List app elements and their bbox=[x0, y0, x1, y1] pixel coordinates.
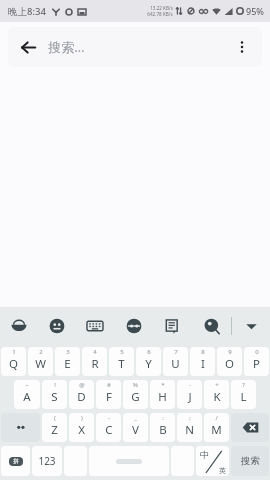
button[interactable]: 7 bbox=[163, 347, 188, 376]
button[interactable]: * bbox=[150, 380, 175, 409]
staticText: ! bbox=[54, 381, 56, 389]
staticText: V bbox=[132, 422, 139, 438]
button[interactable]: 搜索 bbox=[231, 446, 269, 476]
button[interactable]: + bbox=[204, 380, 229, 409]
staticText: Y bbox=[145, 356, 152, 372]
staticText: K bbox=[213, 389, 221, 405]
staticText: G bbox=[131, 389, 140, 405]
button[interactable]: Sticker bbox=[153, 307, 192, 345]
staticText: 3 bbox=[66, 348, 70, 356]
staticText: * bbox=[161, 381, 165, 389]
staticText: ; bbox=[189, 414, 191, 422]
staticText: ~ bbox=[25, 381, 29, 389]
button[interactable]: 5 bbox=[109, 347, 134, 376]
staticText: W bbox=[35, 356, 46, 372]
button[interactable]: Emoji bbox=[38, 307, 76, 345]
button[interactable]: - bbox=[96, 413, 121, 442]
staticText: 642.78 KB/s bbox=[147, 11, 173, 17]
button[interactable]: % bbox=[123, 380, 148, 409]
staticText: Q bbox=[9, 356, 18, 372]
button[interactable]: Theme bbox=[192, 307, 231, 345]
staticText: - bbox=[189, 381, 191, 389]
staticText: 9 bbox=[228, 348, 232, 356]
staticText: M bbox=[211, 422, 222, 438]
button[interactable]: Shift bbox=[1, 413, 40, 442]
staticText: L bbox=[240, 389, 247, 405]
staticText: 4 bbox=[93, 348, 97, 356]
button[interactable]: @ bbox=[69, 380, 94, 409]
staticText: / bbox=[215, 414, 218, 422]
staticText: J bbox=[188, 389, 192, 405]
staticText: 2 bbox=[39, 348, 43, 356]
staticText: N bbox=[185, 422, 194, 438]
button[interactable]: 123 bbox=[32, 446, 62, 476]
button[interactable]: ~ bbox=[14, 380, 40, 409]
staticText: 8 bbox=[201, 348, 205, 356]
button[interactable]: Back bbox=[8, 27, 48, 67]
button[interactable]: Translate bbox=[114, 307, 153, 345]
button[interactable]: _ bbox=[123, 413, 148, 442]
button[interactable]: Clipboard bbox=[0, 307, 38, 345]
staticText: ) bbox=[81, 414, 83, 422]
staticText: T bbox=[118, 356, 125, 372]
staticText: 123 bbox=[38, 454, 56, 468]
staticText: S bbox=[51, 389, 58, 405]
staticText: X bbox=[78, 422, 85, 438]
staticText: 5 bbox=[120, 348, 124, 356]
button[interactable]: Collapse toolbar bbox=[232, 307, 270, 345]
button[interactable]: ; bbox=[177, 413, 202, 442]
button[interactable]: 搜索… bbox=[48, 27, 222, 67]
staticText: B bbox=[159, 422, 167, 438]
button[interactable]: 8 bbox=[190, 347, 215, 376]
staticText: 7 bbox=[174, 348, 178, 356]
button[interactable]: 0 bbox=[244, 347, 269, 376]
staticText: 中 bbox=[200, 449, 209, 460]
button[interactable]: ? bbox=[231, 380, 256, 409]
staticText: 搜索… bbox=[48, 38, 85, 56]
staticText: 1 bbox=[12, 348, 16, 356]
staticText: 0 bbox=[255, 348, 259, 356]
button[interactable]: 4 bbox=[82, 347, 107, 376]
button[interactable]: ! bbox=[42, 380, 67, 409]
staticText: O bbox=[225, 356, 234, 372]
staticText: P bbox=[253, 356, 260, 372]
staticText: ? bbox=[242, 381, 245, 389]
staticText: H bbox=[158, 389, 167, 405]
staticText: 拼 bbox=[13, 458, 19, 465]
staticText: 英 bbox=[219, 466, 226, 475]
staticText: C bbox=[105, 422, 113, 438]
button[interactable]: Keyboard layout bbox=[76, 307, 114, 345]
button[interactable]: 1 bbox=[1, 347, 26, 376]
staticText: @ bbox=[79, 381, 85, 389]
staticText: R bbox=[91, 356, 99, 372]
staticText: U bbox=[171, 356, 180, 372]
staticText: Z bbox=[51, 422, 58, 438]
button[interactable]: Chinese English toggle bbox=[196, 446, 229, 476]
button[interactable]: Input method bbox=[1, 446, 30, 476]
button[interactable]: / bbox=[204, 413, 229, 442]
staticText: F bbox=[106, 389, 112, 405]
staticText: % bbox=[133, 381, 138, 389]
staticText: E bbox=[64, 356, 71, 372]
staticText: D bbox=[77, 389, 86, 405]
button[interactable]: 9 bbox=[217, 347, 242, 376]
staticText: 晚上8:34 bbox=[8, 5, 46, 18]
staticText: A bbox=[23, 389, 31, 405]
staticText: ( bbox=[54, 414, 56, 422]
button[interactable]: : bbox=[150, 413, 175, 442]
button[interactable]: 6 bbox=[136, 347, 161, 376]
button[interactable]: 2 bbox=[28, 347, 53, 376]
button[interactable]: More options bbox=[222, 27, 262, 67]
button[interactable]: Backspace bbox=[231, 413, 269, 442]
button[interactable]: # bbox=[96, 380, 121, 409]
button[interactable]: ) bbox=[69, 413, 94, 442]
staticText: 95% bbox=[246, 5, 264, 17]
button[interactable]: - bbox=[177, 380, 202, 409]
button[interactable]: Space bbox=[89, 446, 169, 476]
staticText: 搜索 bbox=[241, 455, 260, 467]
button[interactable]: ( bbox=[42, 413, 67, 442]
button[interactable]: 3 bbox=[55, 347, 80, 376]
staticText: + bbox=[215, 381, 219, 389]
